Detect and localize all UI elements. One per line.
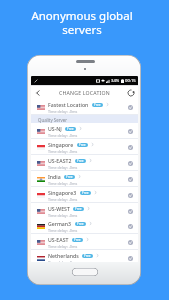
staticText: Time delay: -0ms [48,228,78,233]
staticText: Time delay: -0ms [48,181,78,186]
button[interactable]: Netherlands [31,250,138,262]
staticText: 00:15 [125,78,136,84]
button[interactable]: Refresh [123,85,138,100]
staticText: Free [82,191,89,195]
staticText: Time delay: -0ms [48,244,78,249]
staticText: US-EAST2 [48,157,72,164]
staticText: Quality Server [38,117,68,123]
button[interactable]: Singapore3 [31,187,138,203]
staticText: Singapore [48,141,74,148]
staticText: Free [84,254,91,258]
staticText: Singapore3 [48,189,77,196]
staticText: Free [79,143,86,147]
staticText: German3 [48,220,72,227]
button[interactable]: India [31,171,138,187]
button[interactable]: US-EAST2 [31,155,138,171]
staticText: Time delay: -0ms [48,133,78,138]
staticText: Free [94,103,101,107]
staticText: US-WEST [48,205,70,212]
staticText: Time delay: -0ms [48,260,78,262]
staticText: Time delay: -0ms [48,109,78,114]
staticText: US-NJ [48,125,62,132]
staticText: Fastest Location [48,101,89,108]
button[interactable]: Back [31,85,45,100]
staticText: Free [74,238,81,242]
staticText: 34% [111,78,120,84]
staticText: Free [66,175,73,179]
staticText: Time delay: -0ms [48,165,78,170]
staticText: Free [67,127,74,131]
staticText: Time delay: -0ms [48,149,78,154]
button[interactable]: US-NJ [31,123,138,139]
staticText: Free [77,222,84,226]
button[interactable]: US-EAST [31,234,138,250]
button[interactable]: German3 [31,218,138,234]
staticText: CHANGE LOCATION [59,89,110,96]
staticText: India [48,173,61,180]
button[interactable]: Singapore [31,139,138,155]
staticText: Free [77,159,84,163]
staticText: Time delay: -0ms [48,197,78,202]
button[interactable]: Fastest Location [31,99,138,115]
staticText: Free [75,207,82,211]
staticText: Time delay: -0ms [48,213,78,218]
staticText: US-EAST [48,236,69,243]
staticText: Anonymous global servers [31,8,133,37]
staticText: Netherlands [48,252,79,259]
button[interactable]: US-WEST [31,203,138,219]
